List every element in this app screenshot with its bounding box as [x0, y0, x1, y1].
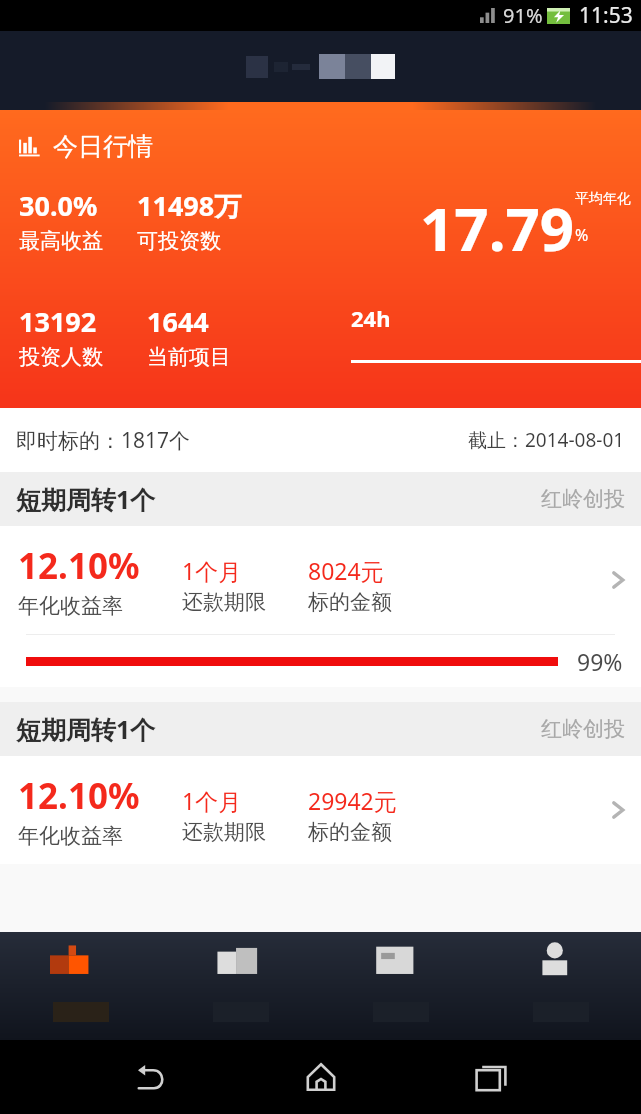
staticText: 30.0% — [19, 187, 98, 224]
staticText: 8024元 — [308, 555, 384, 586]
button[interactable]: 理财 — [161, 932, 321, 1040]
button[interactable]: 主页 — [301, 1057, 341, 1097]
staticText: 1个月 — [182, 555, 242, 586]
staticText: 11:53 — [579, 1, 633, 30]
button[interactable]: 我的 — [481, 932, 641, 1040]
staticText: 平均年化 — [575, 190, 631, 208]
staticText: 还款期限 — [182, 589, 266, 615]
staticText: 11498万 — [137, 187, 242, 224]
staticText: 标的金额 — [308, 589, 392, 615]
staticText: 年化收益率 — [18, 823, 123, 849]
staticText: 29942元 — [308, 785, 397, 816]
staticText: 最高收益 — [19, 228, 103, 254]
staticText: 13192 — [19, 303, 97, 340]
staticText: 红岭创投 — [541, 486, 625, 512]
button[interactable]: 首页 — [0, 932, 161, 1040]
button[interactable]: 最近任务 — [471, 1057, 511, 1097]
staticText: % — [575, 224, 589, 246]
staticText: 17.79 — [420, 187, 575, 269]
staticText: 今日行情 — [53, 131, 153, 162]
staticText: 还款期限 — [182, 819, 266, 845]
button[interactable]: 短期周转1个 — [0, 472, 641, 687]
staticText: 当前项目 — [147, 344, 231, 370]
staticText: 短期周转1个 — [16, 482, 156, 516]
button[interactable]: 今日行情 — [0, 110, 641, 408]
staticText: 短期周转1个 — [16, 712, 156, 746]
staticText: 24h — [351, 303, 391, 333]
staticText: 即时标的：1817个 — [16, 426, 191, 455]
staticText: 1644 — [147, 303, 209, 340]
staticText: 91% — [503, 2, 543, 29]
staticText: 红岭创投 — [541, 716, 625, 742]
button[interactable]: 短期周转1个 — [0, 702, 641, 864]
staticText: 1个月 — [182, 785, 242, 816]
staticText: 投资人数 — [19, 344, 103, 370]
other: 查看详情 — [603, 565, 633, 595]
staticText: 年化收益率 — [18, 593, 123, 619]
other: 查看详情 — [603, 795, 633, 825]
staticText: 12.10% — [18, 772, 140, 820]
staticText: 可投资数 — [137, 228, 221, 254]
staticText: 99% — [577, 646, 623, 677]
staticText: 12.10% — [18, 542, 140, 590]
button[interactable]: 资讯 — [321, 932, 481, 1040]
staticText: 截止：2014-08-01 — [468, 427, 625, 453]
button[interactable]: 返回 — [130, 1057, 170, 1097]
staticText: 标的金额 — [308, 819, 392, 845]
